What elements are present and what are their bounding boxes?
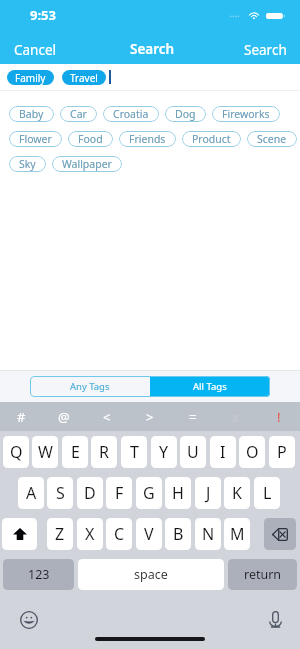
button[interactable]: S: [47, 477, 73, 509]
button[interactable]: All Tags: [150, 376, 270, 397]
staticText: Dog: [175, 107, 196, 121]
button[interactable]: return: [228, 559, 297, 590]
staticText: Flower: [19, 132, 52, 146]
button[interactable]: Shift: [2, 518, 37, 550]
button[interactable]: T: [121, 436, 147, 468]
staticText: H: [172, 482, 184, 504]
button[interactable]: L: [254, 477, 280, 509]
button[interactable]: P: [269, 436, 295, 468]
button[interactable]: Sky: [9, 156, 46, 172]
staticText: Friends: [129, 132, 166, 146]
staticText: Scene: [257, 132, 287, 146]
button[interactable]: Dog: [165, 106, 206, 122]
button[interactable]: Wallpaper: [52, 156, 122, 172]
staticText: U: [187, 441, 199, 463]
button[interactable]: C: [106, 518, 132, 550]
staticText: Y: [159, 441, 169, 463]
button[interactable]: M: [224, 518, 250, 550]
staticText: Food: [78, 132, 103, 146]
staticText: Car: [70, 107, 87, 121]
button[interactable]: 123: [3, 559, 74, 590]
staticText: Search: [130, 40, 175, 58]
staticText: G: [143, 482, 155, 504]
button[interactable]: >: [128, 402, 171, 431]
staticText: Search: [244, 41, 287, 57]
button[interactable]: K: [224, 477, 250, 509]
staticText: space: [134, 566, 168, 583]
button[interactable]: F: [106, 477, 132, 509]
staticText: J: [206, 482, 211, 504]
button[interactable]: Z: [47, 518, 73, 550]
staticText: @: [58, 408, 70, 426]
staticText: Cancel: [14, 41, 57, 57]
staticText: B: [173, 523, 184, 545]
staticText: Z: [55, 523, 65, 545]
button[interactable]: Car: [60, 106, 97, 122]
staticText: Wallpaper: [62, 157, 112, 171]
staticText: K: [232, 482, 242, 504]
staticText: Product: [192, 132, 231, 146]
button[interactable]: Q: [3, 436, 29, 468]
button[interactable]: X: [77, 518, 103, 550]
button[interactable]: #: [0, 402, 42, 431]
button[interactable]: Cancel: [0, 34, 70, 64]
button[interactable]: B: [165, 518, 191, 550]
staticText: x: [232, 408, 239, 426]
button[interactable]: Search: [231, 34, 300, 64]
button[interactable]: <: [85, 402, 128, 431]
button[interactable]: J: [195, 477, 221, 509]
button[interactable]: space: [78, 559, 224, 590]
staticText: M: [230, 523, 245, 545]
staticText: C: [114, 523, 125, 545]
button[interactable]: E: [62, 436, 88, 468]
button[interactable]: Flower: [9, 131, 62, 147]
button[interactable]: !: [257, 402, 300, 431]
button[interactable]: @: [42, 402, 85, 431]
staticText: return: [244, 566, 282, 583]
button[interactable]: R: [91, 436, 117, 468]
button[interactable]: D: [77, 477, 103, 509]
button[interactable]: A: [18, 477, 44, 509]
button[interactable]: Travel: [62, 70, 106, 85]
staticText: S: [56, 482, 65, 504]
button[interactable]: Any Tags: [30, 376, 150, 397]
staticText: A: [26, 482, 37, 504]
staticText: 9:53: [30, 6, 56, 24]
button[interactable]: V: [136, 518, 162, 550]
button[interactable]: U: [180, 436, 206, 468]
staticText: V: [144, 523, 154, 545]
staticText: Croatia: [113, 107, 149, 121]
button[interactable]: Fireworks: [212, 106, 280, 122]
button[interactable]: Emoji keyboard: [20, 611, 38, 629]
staticText: >: [146, 408, 154, 426]
button[interactable]: W: [32, 436, 58, 468]
button[interactable]: Product: [182, 131, 241, 147]
staticText: #: [17, 408, 26, 426]
button[interactable]: Food: [68, 131, 113, 147]
staticText: D: [84, 482, 96, 504]
staticText: R: [99, 441, 109, 463]
button[interactable]: Baby: [9, 106, 54, 122]
button[interactable]: Dictation: [267, 611, 284, 628]
button[interactable]: =: [171, 402, 214, 431]
staticText: F: [115, 482, 124, 504]
button[interactable]: Friends: [119, 131, 176, 147]
staticText: =: [189, 408, 197, 426]
button[interactable]: H: [165, 477, 191, 509]
button[interactable]: G: [136, 477, 162, 509]
button[interactable]: Croatia: [103, 106, 159, 122]
staticText: X: [85, 523, 95, 545]
staticText: O: [246, 441, 259, 463]
staticText: !: [277, 408, 281, 426]
button[interactable]: O: [239, 436, 265, 468]
button[interactable]: Scene: [247, 131, 297, 147]
staticText: Q: [10, 441, 23, 463]
button[interactable]: Backspace: [264, 518, 296, 550]
button[interactable]: N: [195, 518, 221, 550]
staticText: P: [277, 441, 287, 463]
staticText: E: [71, 441, 80, 463]
button[interactable]: I: [210, 436, 236, 468]
button[interactable]: Family: [7, 70, 54, 85]
button[interactable]: Y: [151, 436, 177, 468]
